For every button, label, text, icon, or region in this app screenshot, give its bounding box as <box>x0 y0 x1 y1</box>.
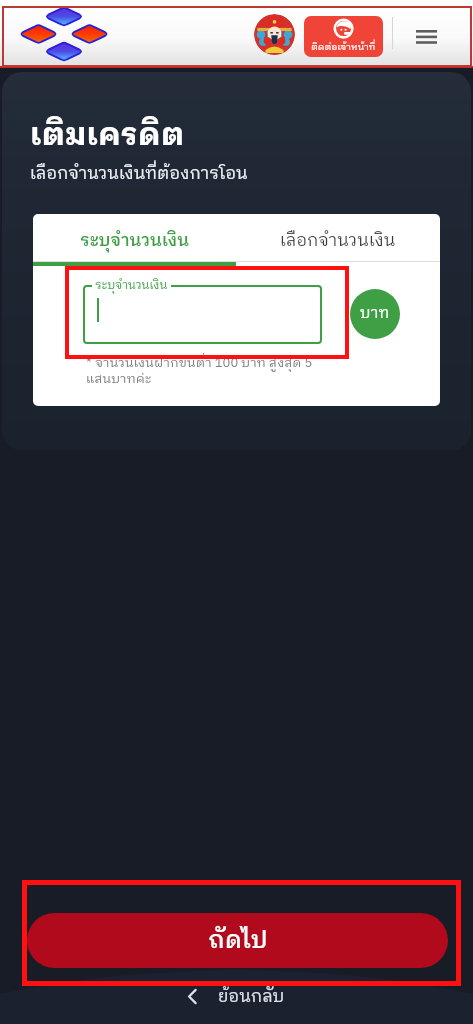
button[interactable]: ติดต่อเจ้าหน้าที่ <box>304 16 383 57</box>
staticText: ย้อนกลับ <box>218 983 285 1009</box>
button[interactable]: ระบุจำนวนเงิน <box>33 217 236 265</box>
staticText: ติดต่อเจ้าหน้าที่ <box>311 39 376 55</box>
button[interactable]: เลือกจำนวนเงิน <box>236 217 440 265</box>
button[interactable]: ถัดไป <box>27 913 448 968</box>
staticText: ระบุจำนวนเงิน <box>95 276 168 295</box>
button[interactable]: Profile <box>254 14 295 55</box>
staticText: เลือกจำนวนเงิน <box>280 227 396 255</box>
button[interactable]: Home <box>18 8 110 62</box>
button[interactable]: บาท <box>350 289 400 339</box>
button[interactable]: ระบุจำนวนเงิน <box>83 276 322 344</box>
staticText: * จำนวนเงินฝากขนต่ำ 100 บาท สูงสุด 5 แสน… <box>86 352 336 390</box>
staticText: เลือกจำนวนเงินที่ต้องการโอน <box>30 160 248 188</box>
staticText: ระบุจำนวนเงิน <box>80 227 190 255</box>
button[interactable]: ย้อนกลับ <box>0 983 473 1009</box>
staticText: เติมเครดิต <box>30 110 185 161</box>
staticText: ถัดไป <box>208 921 268 961</box>
button[interactable]: Menu <box>406 17 446 57</box>
staticText: บาท <box>360 301 390 327</box>
